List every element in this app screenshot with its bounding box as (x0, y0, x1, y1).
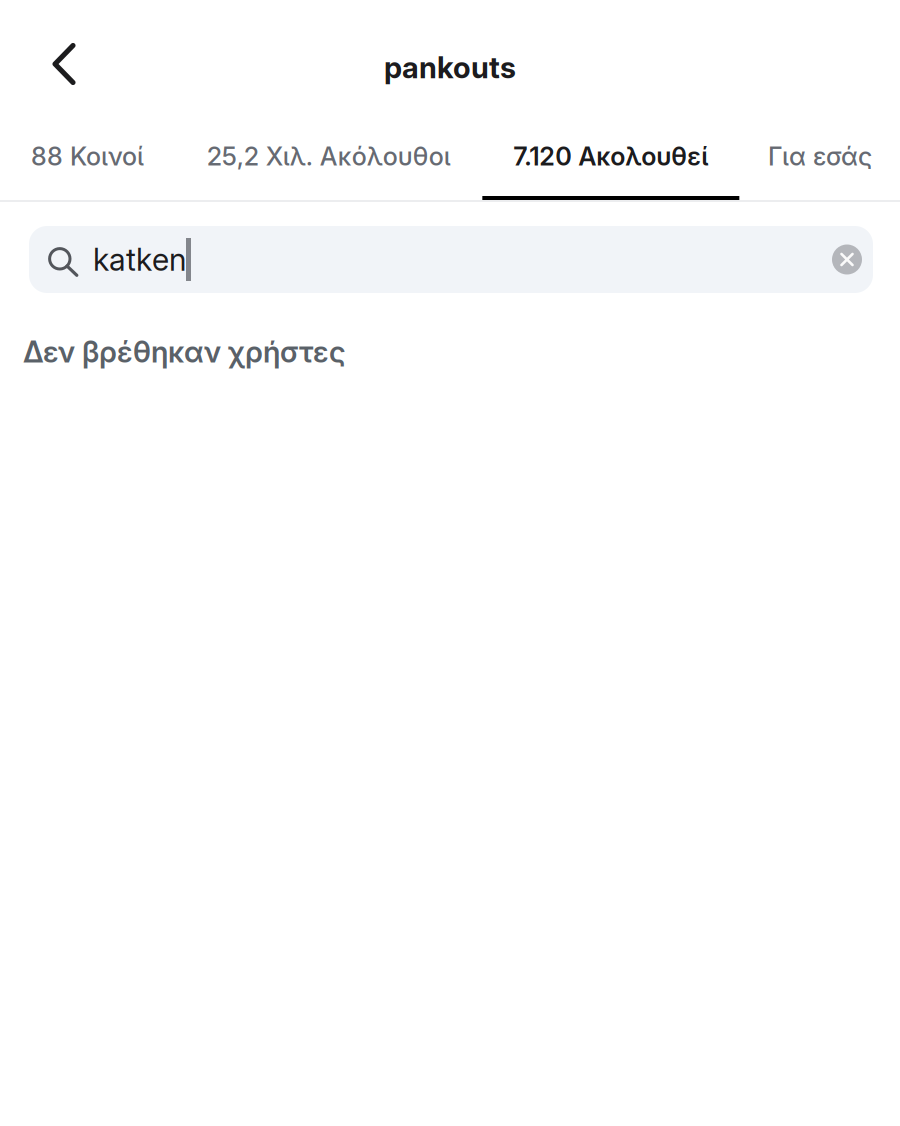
button[interactable]: Back (0, 20, 97, 101)
staticText: 7.120 Ακολουθεί (513, 141, 708, 172)
button[interactable]: 88 Κοινοί (0, 122, 175, 200)
button[interactable]: Search (29, 226, 832, 293)
button[interactable]: Clear text (832, 244, 873, 274)
staticText: 25,2 Χιλ. Ακόλουθοι (207, 141, 451, 172)
staticText: 88 Κοινοί (31, 141, 144, 172)
staticText: katken (93, 241, 186, 278)
staticText: Για εσάς (768, 141, 872, 172)
staticText: pankouts (384, 50, 516, 85)
button[interactable]: Για εσάς (740, 122, 900, 200)
button[interactable]: 7.120 Ακολουθεί (482, 122, 739, 200)
button[interactable]: 25,2 Χιλ. Ακόλουθοι (176, 122, 482, 200)
staticText: Δεν βρέθηκαν χρήστες (23, 334, 346, 369)
